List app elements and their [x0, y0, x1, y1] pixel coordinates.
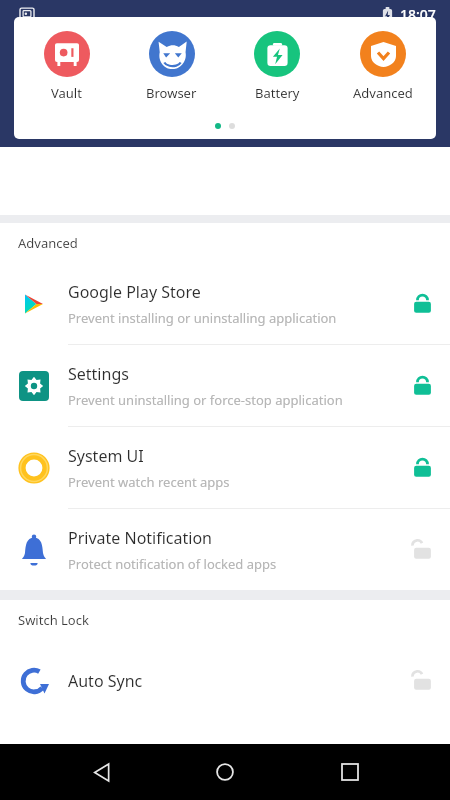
staticText: Switch Lock [18, 611, 89, 629]
staticText: Vault [51, 84, 82, 102]
staticText: AppLock [66, 41, 165, 72]
button[interactable]: Private Notification [0, 509, 450, 590]
staticText: PROTECT [307, 92, 369, 111]
button[interactable]: Battery [224, 31, 330, 102]
button[interactable]: Google Play Store [0, 263, 450, 344]
staticText: Advanced [18, 234, 78, 252]
staticText: Google Play Store [68, 281, 201, 303]
button[interactable]: Home [201, 748, 249, 796]
button[interactable]: Settings [0, 345, 450, 426]
staticText: Prevent installing or uninstalling appli… [68, 309, 337, 327]
button[interactable]: Auto Sync [0, 640, 450, 721]
button[interactable]: System UI [0, 427, 450, 508]
staticText: Private Notification [68, 527, 212, 549]
button[interactable]: Browser [119, 31, 224, 102]
staticText: Auto Sync [68, 670, 143, 692]
button[interactable]: Store [356, 34, 400, 78]
button[interactable]: Recent apps [326, 748, 374, 796]
button[interactable]: Vault [14, 31, 119, 102]
staticText: System UI [68, 445, 144, 467]
staticText: Prevent watch recent apps [68, 473, 230, 491]
staticText: Settings [68, 363, 129, 385]
button[interactable]: Rewards [400, 34, 444, 78]
button[interactable]: PROTECT [225, 84, 450, 130]
staticText: Prevent uninstalling or force-stop appli… [68, 391, 343, 409]
button[interactable]: Advanced [330, 31, 436, 102]
button[interactable]: Open navigation menu [10, 34, 54, 78]
staticText: Browser [146, 84, 197, 102]
staticText: Advanced [353, 84, 413, 102]
button[interactable]: Back [77, 748, 125, 796]
staticText: 18:07 [400, 5, 436, 24]
staticText: Battery [255, 84, 300, 102]
button[interactable]: PRIVACY [0, 84, 225, 130]
staticText: Protect notification of locked apps [68, 555, 277, 573]
